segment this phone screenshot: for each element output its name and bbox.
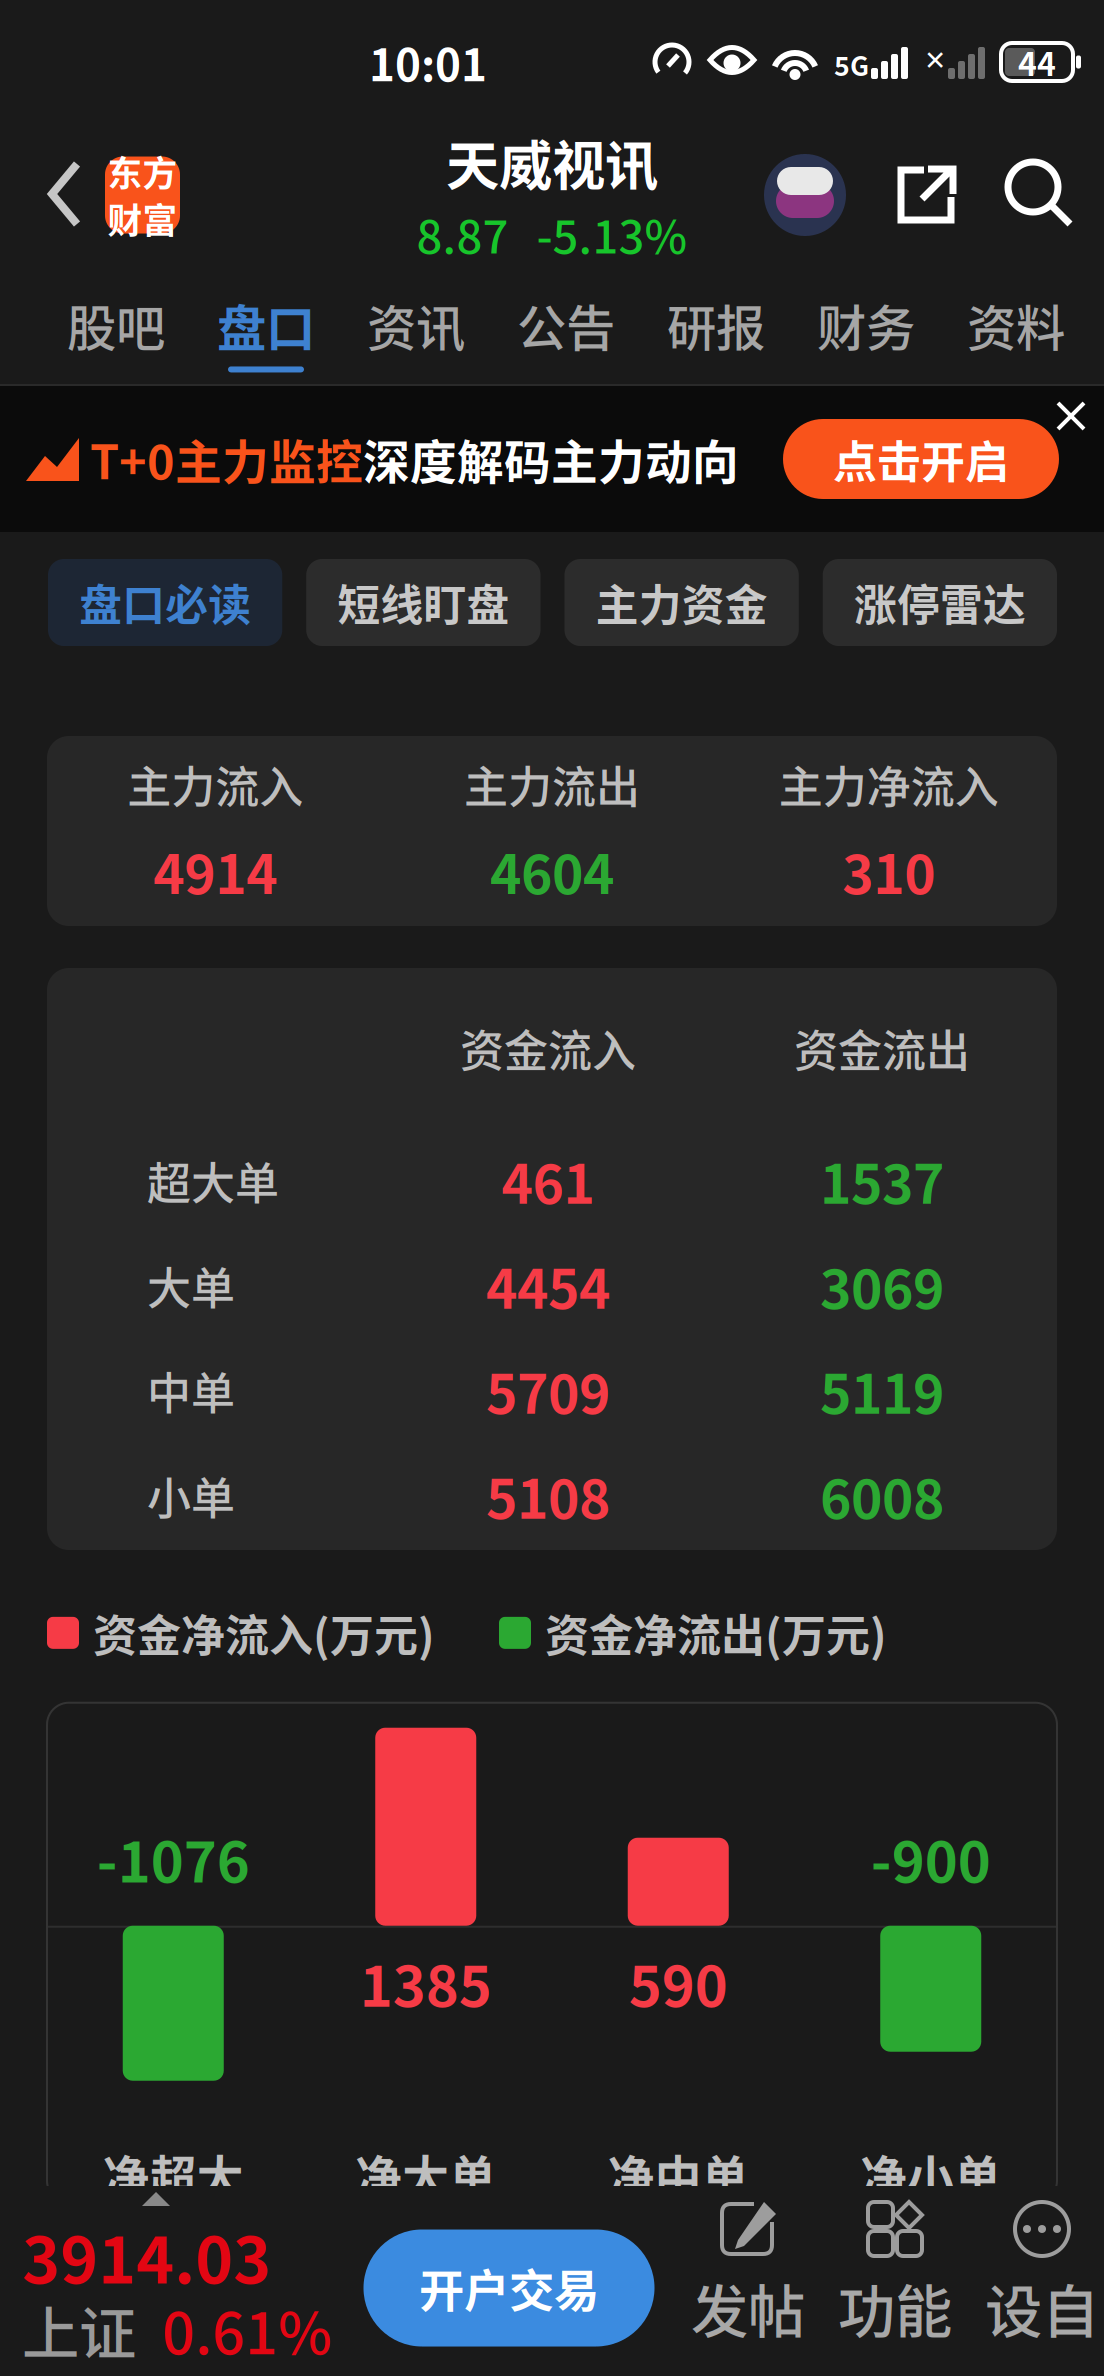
staticText: 主力流入 [127, 752, 303, 816]
staticText: 点击开启 [833, 427, 1009, 491]
button[interactable]: 财务 [791, 266, 941, 384]
staticText: 研报 [667, 289, 765, 360]
staticText: 净中单 [608, 2141, 749, 2208]
button[interactable]: 返回 [0, 156, 180, 233]
staticText: 公告 [517, 289, 615, 360]
button[interactable]: 搜索 [1008, 162, 1074, 228]
staticText: 5108 [486, 1457, 610, 1534]
staticText: 3914.03 [22, 2209, 271, 2302]
button[interactable]: 资料 [941, 266, 1091, 384]
staticText: 深度解码主力动向 [363, 425, 739, 493]
staticText: 8.87 [416, 201, 508, 266]
staticText: 资金净流出(万元) [545, 1601, 887, 1665]
staticText: 6008 [820, 1457, 944, 1534]
button[interactable]: 分享 [894, 163, 960, 227]
staticText: 天威视讯 [446, 124, 658, 201]
button[interactable]: 涨停雷达 [823, 559, 1057, 646]
staticText: T+0主力监控 [90, 425, 363, 493]
staticText: 3069 [820, 1247, 944, 1324]
staticText: 资料 [967, 289, 1065, 360]
staticText: -1076 [97, 1818, 250, 1899]
staticText: 0.61% [162, 2288, 332, 2371]
button[interactable]: 股吧 [41, 266, 191, 384]
staticText: 1537 [820, 1142, 944, 1219]
staticText: 小单 [147, 1464, 235, 1527]
staticText: 590 [629, 1942, 728, 2023]
staticText: 开户交易 [419, 2255, 599, 2321]
staticText: 461 [501, 1142, 594, 1219]
button[interactable]: 开户交易 [363, 2229, 654, 2346]
staticText: 主力净流入 [779, 752, 999, 816]
staticText: 5G [834, 45, 869, 84]
staticText: 涨停雷达 [854, 572, 1026, 633]
staticText: 净大单 [355, 2141, 496, 2208]
staticText: 大单 [147, 1254, 235, 1317]
button[interactable]: AI助手 [764, 154, 846, 236]
staticText: 4454 [486, 1247, 610, 1324]
staticText: 股吧 [67, 289, 165, 360]
staticText: 1385 [360, 1942, 492, 2023]
staticText: 设自 [985, 2266, 1099, 2349]
staticText: 资讯 [367, 289, 465, 360]
button[interactable]: 点击开启 [783, 419, 1059, 499]
staticText: 资金流入 [460, 1016, 636, 1080]
staticText: 财务 [817, 289, 915, 360]
button[interactable]: 盘口 [191, 266, 341, 384]
staticText: 财富 [107, 193, 177, 244]
staticText: 4604 [490, 832, 614, 909]
button[interactable]: 研报 [641, 266, 791, 384]
button[interactable]: 公告 [491, 266, 641, 384]
staticText: 主力流出 [464, 752, 640, 816]
staticText: 短线盯盘 [337, 572, 509, 633]
button[interactable]: 功能 [833, 2186, 957, 2376]
staticText: -900 [871, 1818, 991, 1899]
button[interactable]: 设自 [980, 2186, 1104, 2376]
staticText: 功能 [838, 2266, 952, 2349]
staticText: 净小单 [860, 2141, 1001, 2208]
staticText: 中单 [147, 1359, 235, 1422]
staticText: 净超大 [103, 2141, 244, 2208]
button[interactable]: 盘口必读 [48, 559, 282, 646]
staticText: 东方 [107, 146, 177, 196]
staticText: 盘口必读 [79, 572, 251, 633]
staticText: ✕ [924, 45, 946, 76]
staticText: 4914 [153, 832, 277, 909]
button[interactable]: 3914.03 [0, 2191, 332, 2371]
button[interactable]: 发帖 [686, 2186, 810, 2376]
staticText: 发帖 [691, 2266, 805, 2349]
staticText: 5119 [820, 1352, 944, 1429]
staticText: 资金净流入(万元) [93, 1601, 435, 1665]
staticText: 310 [842, 832, 935, 909]
staticText: 上证 [22, 2288, 136, 2371]
staticText: 盘口 [217, 289, 315, 360]
staticText: 主力资金 [596, 572, 768, 633]
staticText: 44 [1018, 39, 1056, 85]
button[interactable]: 资讯 [341, 266, 491, 384]
staticText: 资金流出 [794, 1016, 970, 1080]
button[interactable]: 关闭 [1035, 386, 1104, 452]
button[interactable]: 主力资金 [564, 559, 799, 646]
staticText: 超大单 [147, 1149, 279, 1212]
staticText: -5.13% [536, 201, 687, 266]
staticText: 10:01 [369, 30, 487, 94]
button[interactable]: 短线盯盘 [306, 559, 540, 646]
staticText: 5709 [486, 1352, 610, 1429]
